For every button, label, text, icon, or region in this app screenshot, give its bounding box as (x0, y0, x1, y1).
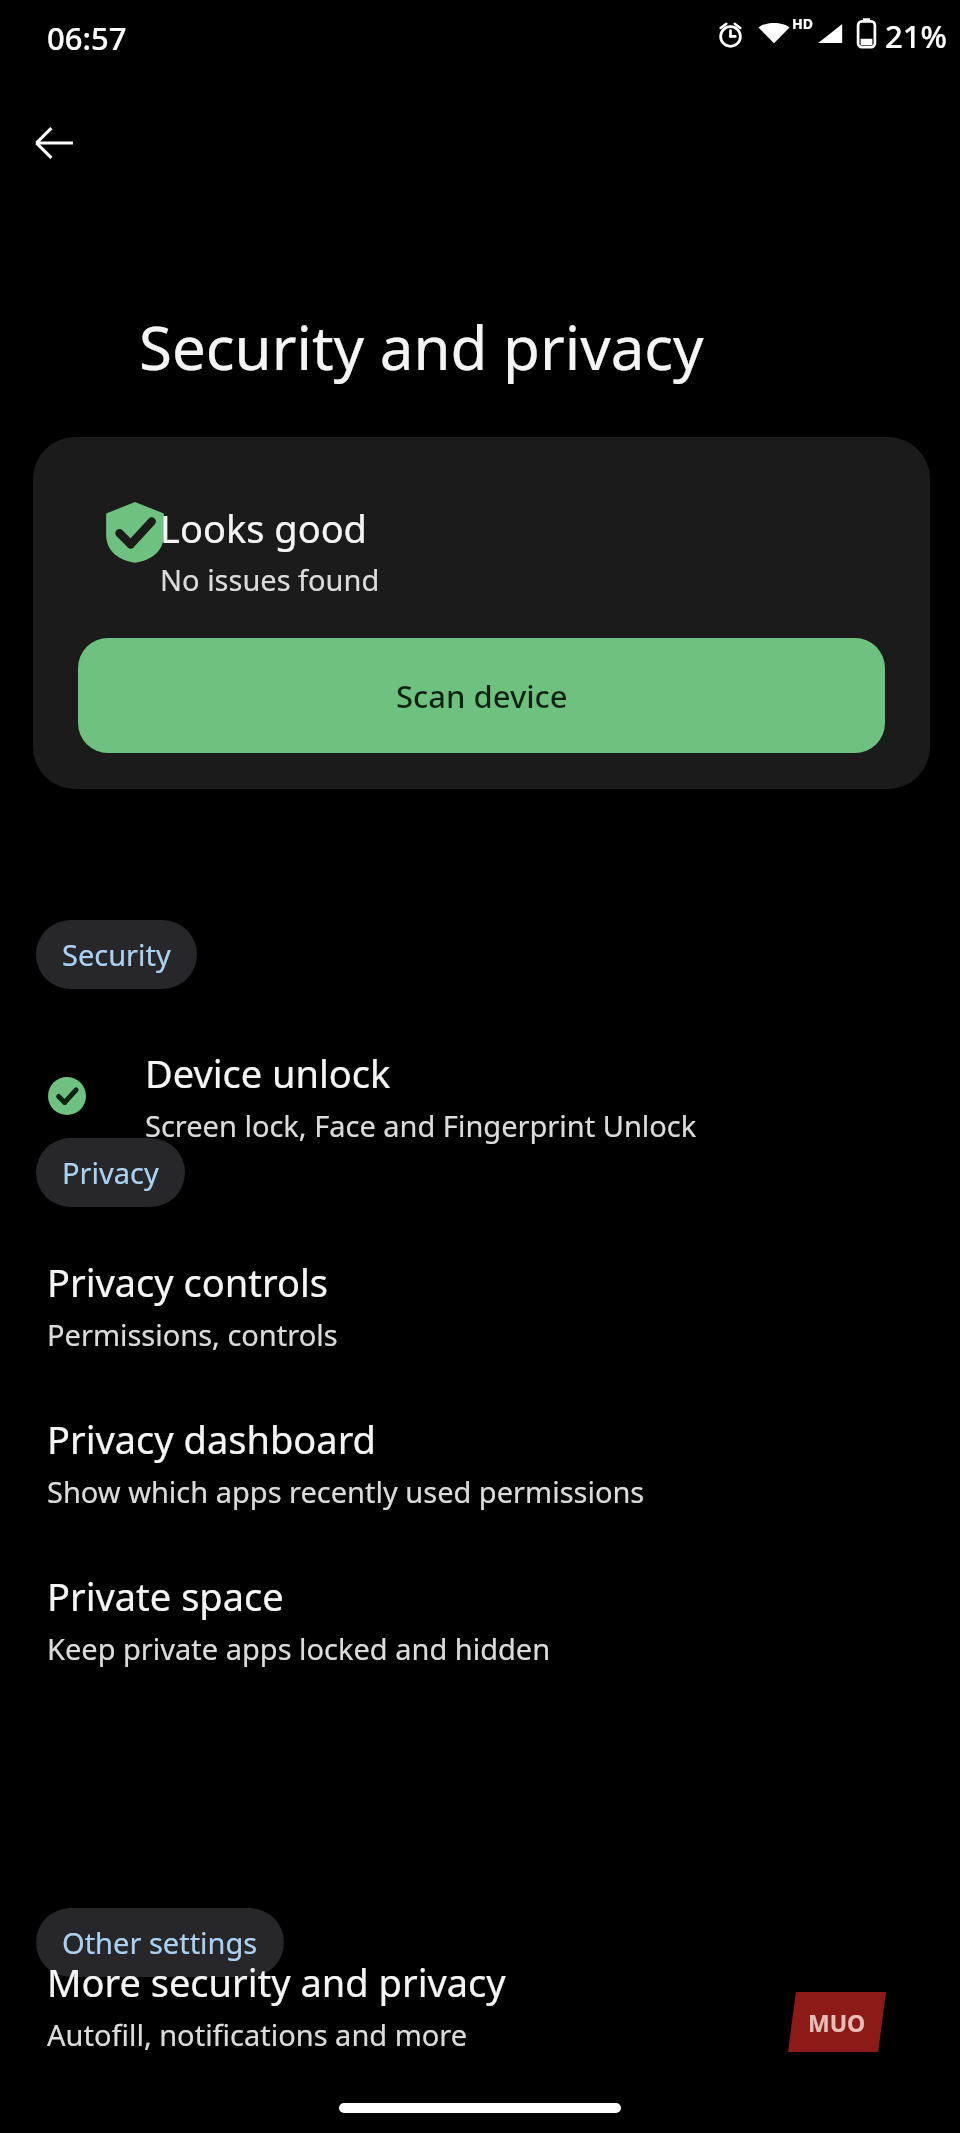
staticText: Permissions, controls (47, 1315, 338, 1354)
staticText: Privacy controls (47, 1256, 328, 1308)
button[interactable]: Privacy (36, 1138, 185, 1207)
staticText: Scan device (396, 675, 568, 717)
button[interactable]: Back (16, 105, 92, 181)
staticText: No issues found (160, 560, 380, 599)
staticText: Device unlock (145, 1047, 391, 1099)
button[interactable]: Privacy controls (0, 1248, 960, 1362)
staticText: Privacy (62, 1153, 159, 1192)
staticText: Private space (47, 1570, 284, 1622)
button[interactable]: Other settings (36, 1908, 284, 1977)
button[interactable]: Privacy dashboard (0, 1405, 960, 1519)
staticText: Autofill, notifications and more (47, 2015, 468, 2054)
staticText: 21% (885, 15, 947, 51)
button[interactable]: Scan device (78, 638, 885, 753)
button[interactable]: More security and privacy (0, 1948, 960, 2062)
staticText: Screen lock, Face and Fingerprint Unlock (145, 1106, 697, 1145)
button[interactable]: Device unlock (0, 1032, 960, 1160)
button[interactable]: Private space (0, 1562, 960, 1676)
staticText: More security and privacy (47, 1956, 506, 2008)
button[interactable]: Security (36, 920, 197, 989)
staticText: HD (792, 14, 813, 33)
staticText: Security (62, 935, 171, 974)
staticText: Keep private apps locked and hidden (47, 1629, 551, 1668)
staticText: 06:57 (47, 17, 127, 59)
staticText: Security and privacy (139, 306, 704, 388)
staticText: Looks good (160, 502, 367, 554)
staticText: Show which apps recently used permission… (47, 1472, 645, 1511)
staticText: MUO (808, 2007, 866, 2038)
staticText: Other settings (62, 1923, 258, 1962)
staticText: Privacy dashboard (47, 1413, 376, 1465)
